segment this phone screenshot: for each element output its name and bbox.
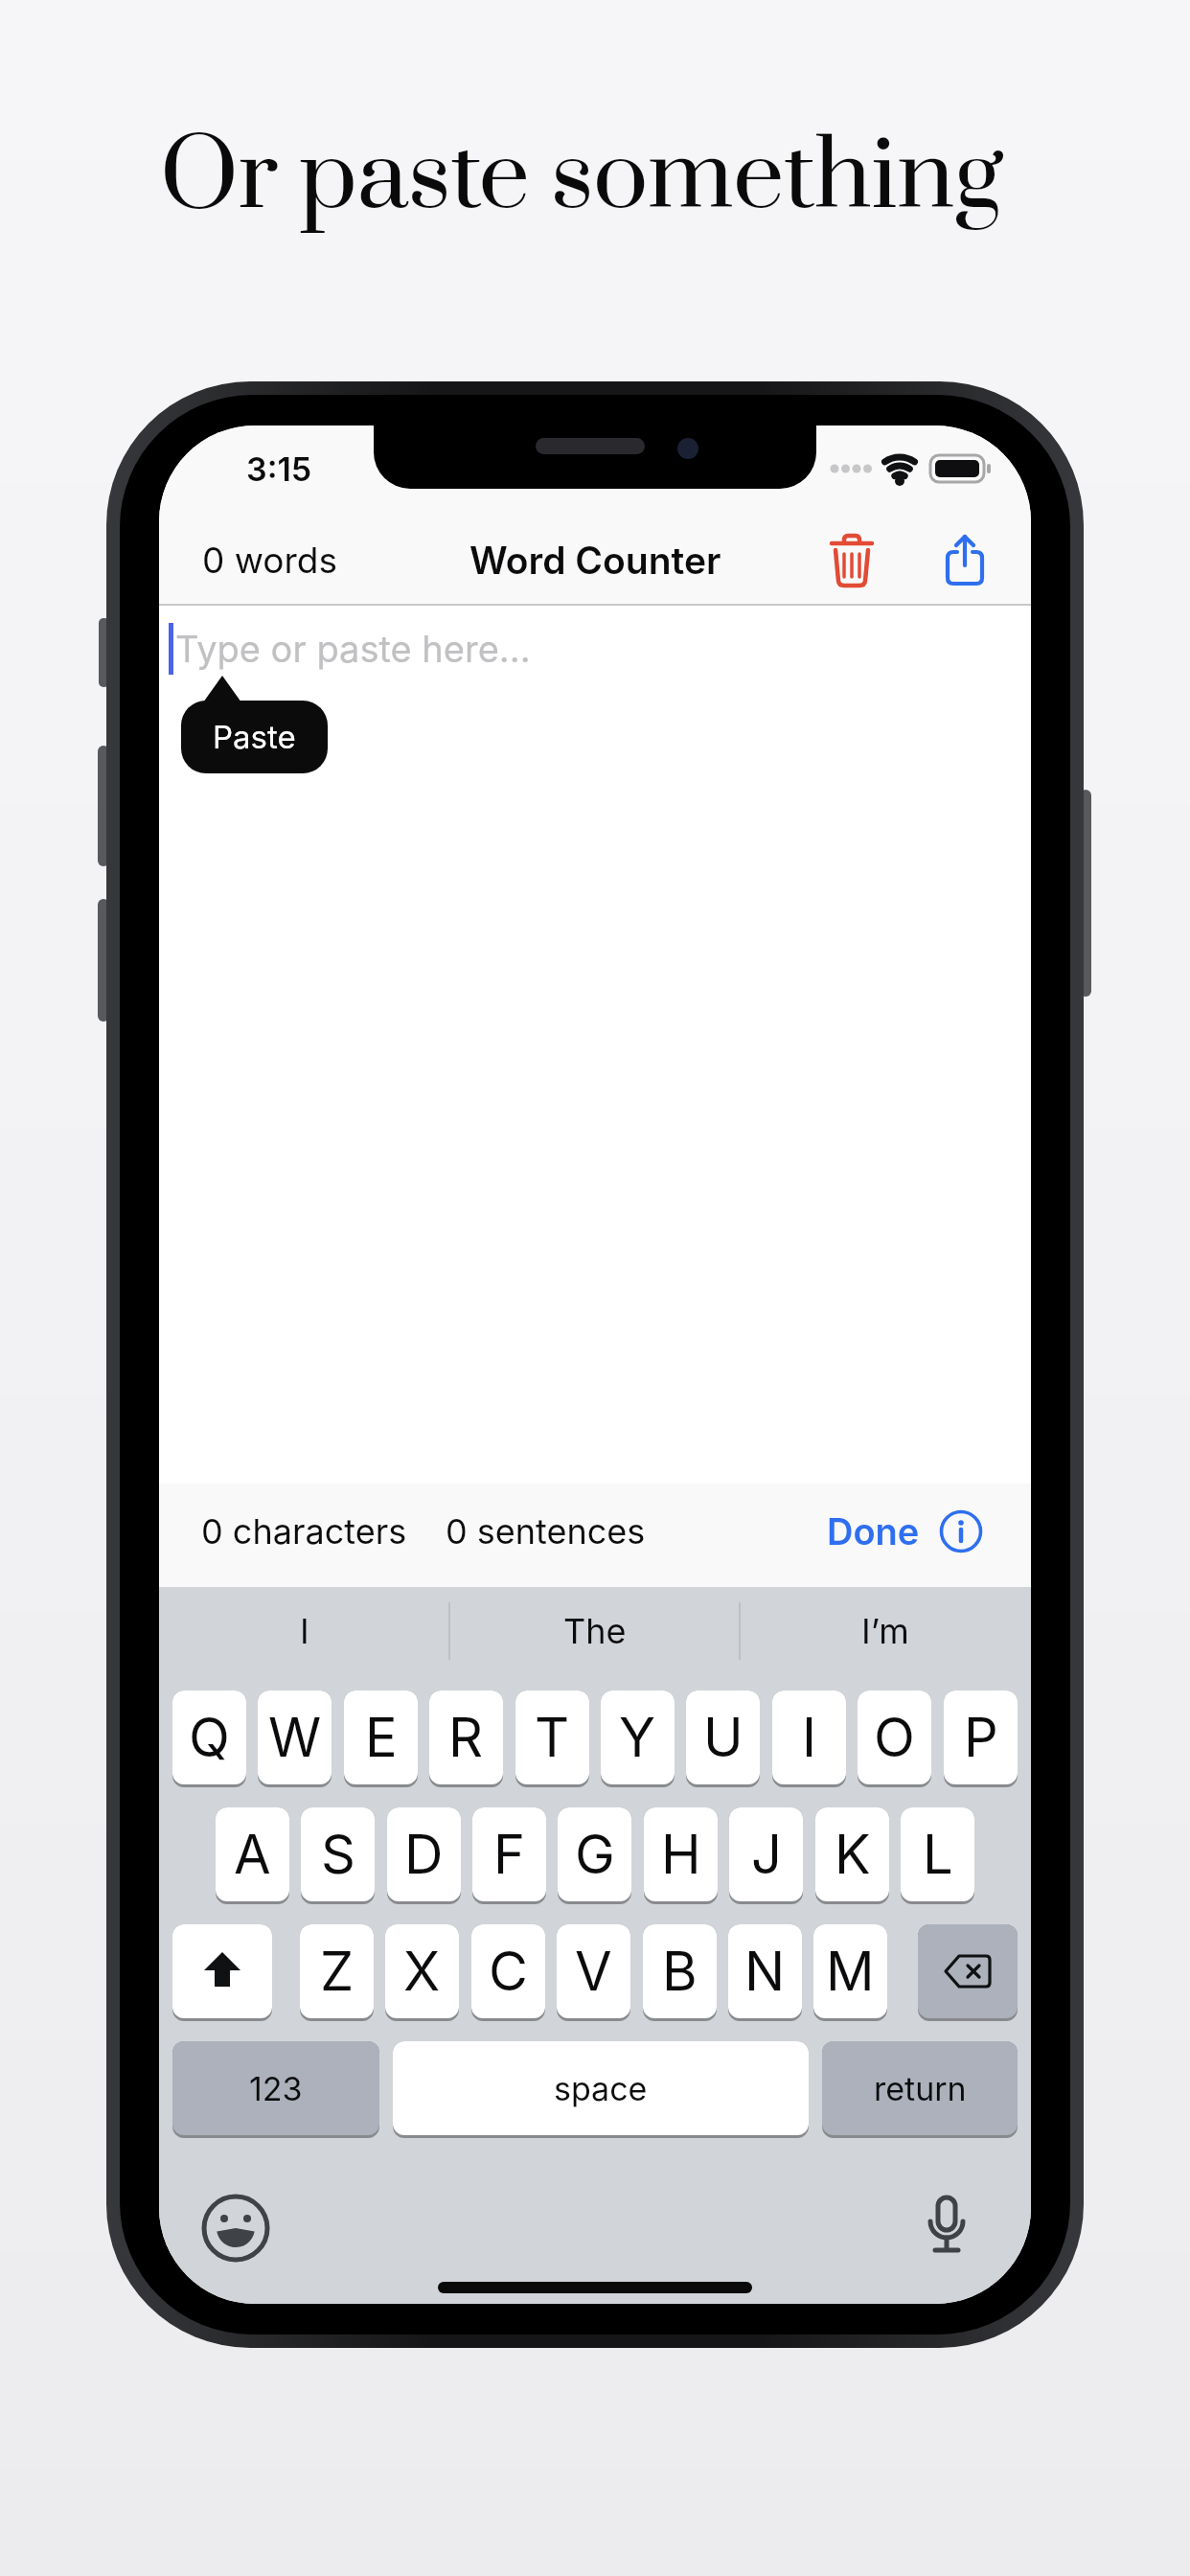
staticText: U (703, 1705, 744, 1770)
button[interactable]: R (429, 1690, 503, 1787)
staticText: Word Counter (469, 538, 721, 583)
button[interactable]: E (344, 1690, 418, 1787)
staticText: M (826, 1939, 875, 2004)
button[interactable]: M (813, 1924, 887, 2021)
button[interactable]: Z (300, 1924, 374, 2021)
staticText: I (300, 1610, 309, 1652)
button[interactable]: Q (172, 1690, 246, 1787)
button[interactable]: G (558, 1807, 631, 1904)
staticText: Paste (213, 718, 296, 756)
staticText: O (874, 1705, 915, 1770)
staticText: Y (619, 1705, 656, 1770)
button[interactable]: U (686, 1690, 760, 1787)
button[interactable] (945, 534, 985, 586)
staticText: H (661, 1822, 701, 1887)
staticText: E (365, 1705, 398, 1770)
staticText: X (403, 1939, 441, 2004)
button[interactable]: Paste (181, 701, 328, 773)
staticText: S (321, 1822, 355, 1887)
button[interactable]: 123 (172, 2041, 379, 2138)
button[interactable] (910, 2192, 983, 2265)
button[interactable]: L (901, 1807, 974, 1904)
button[interactable]: W (258, 1690, 332, 1787)
staticText: return (874, 2069, 967, 2108)
staticText: Done (827, 1509, 920, 1553)
button[interactable]: A (216, 1807, 289, 1904)
staticText: Type or paste here... (175, 627, 531, 671)
staticText: K (835, 1822, 871, 1887)
button[interactable]: Y (601, 1690, 675, 1787)
staticText: P (964, 1705, 998, 1770)
staticText: R (448, 1705, 484, 1770)
button[interactable]: I (159, 1606, 449, 1656)
staticText: 123 (249, 2069, 303, 2108)
button[interactable]: D (387, 1807, 461, 1904)
staticText: A (234, 1822, 271, 1887)
staticText: J (751, 1822, 782, 1887)
staticText: N (744, 1939, 786, 2004)
button[interactable]: P (944, 1690, 1018, 1787)
staticText: space (554, 2069, 648, 2108)
staticText: G (575, 1822, 615, 1887)
button[interactable]: T (515, 1690, 589, 1787)
button[interactable]: B (643, 1924, 717, 2021)
button[interactable]: I (772, 1690, 846, 1787)
staticText: L (923, 1822, 953, 1887)
staticText: Or paste something (160, 117, 1003, 241)
button[interactable]: H (644, 1807, 718, 1904)
staticText: Z (320, 1939, 355, 2004)
button[interactable]: V (557, 1924, 630, 2021)
staticText: 3:15 (246, 449, 312, 489)
button[interactable] (939, 1509, 983, 1553)
button[interactable] (172, 1924, 272, 2021)
staticText: T (535, 1705, 570, 1770)
button[interactable] (199, 2192, 272, 2265)
button[interactable]: C (471, 1924, 545, 2021)
button[interactable]: O (858, 1690, 931, 1787)
staticText: I (802, 1705, 817, 1770)
button[interactable]: The (449, 1606, 740, 1656)
button[interactable]: 0 words (202, 537, 394, 583)
button[interactable]: N (728, 1924, 802, 2021)
staticText: F (493, 1822, 526, 1887)
staticText: I’m (861, 1610, 909, 1652)
button[interactable]: S (301, 1807, 375, 1904)
button[interactable]: I’m (740, 1606, 1031, 1656)
button[interactable]: F (472, 1807, 546, 1904)
staticText: V (575, 1939, 612, 2004)
staticText: C (489, 1939, 528, 2004)
staticText: Q (189, 1705, 230, 1770)
button[interactable] (918, 1924, 1018, 2021)
button[interactable]: Done (820, 1507, 926, 1555)
button[interactable]: return (822, 2041, 1018, 2138)
staticText: 0 characters (201, 1510, 407, 1552)
button[interactable]: J (729, 1807, 803, 1904)
staticText: The (563, 1610, 627, 1652)
staticText: D (404, 1822, 444, 1887)
button[interactable] (830, 534, 874, 586)
staticText: 0 words (202, 539, 338, 582)
staticText: B (662, 1939, 698, 2004)
button[interactable]: X (385, 1924, 459, 2021)
staticText: W (268, 1705, 322, 1770)
button[interactable]: K (815, 1807, 889, 1904)
button[interactable]: space (393, 2041, 809, 2138)
staticText: 0 sentences (446, 1510, 646, 1552)
